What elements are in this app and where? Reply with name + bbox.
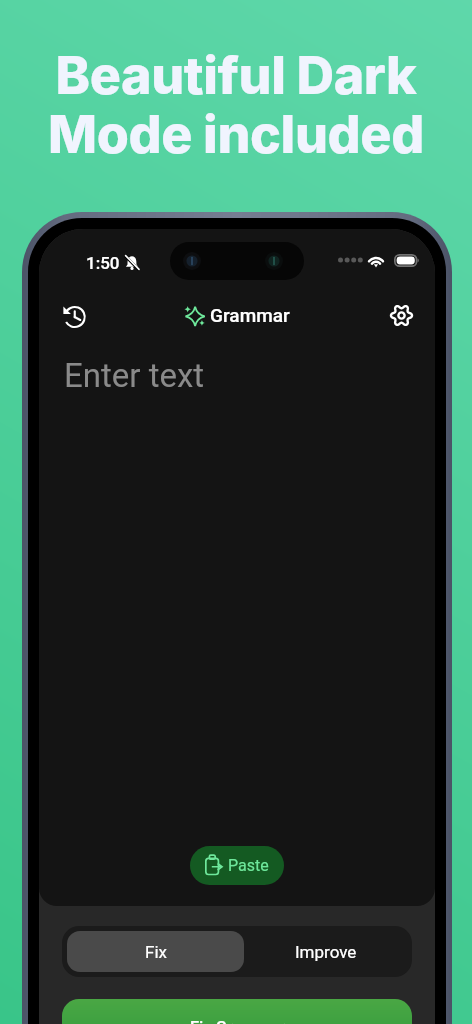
staticText: Grammar — [210, 304, 290, 326]
staticText: Fix Grammar — [190, 1018, 285, 1024]
button[interactable]: Paste — [190, 846, 284, 885]
button[interactable]: History — [53, 295, 93, 335]
button[interactable]: Settings — [381, 295, 421, 335]
button[interactable]: Fix Grammar — [62, 999, 412, 1024]
button[interactable]: Fix — [67, 931, 244, 972]
staticText: Fix — [145, 942, 167, 962]
staticText: 1:50 — [86, 253, 120, 273]
button[interactable]: Improve — [244, 931, 407, 972]
staticText: Improve — [295, 942, 357, 962]
staticText: Enter text — [64, 356, 205, 395]
staticText: Beautiful Dark Mode included — [0, 44, 472, 165]
staticText: Paste — [228, 856, 269, 875]
